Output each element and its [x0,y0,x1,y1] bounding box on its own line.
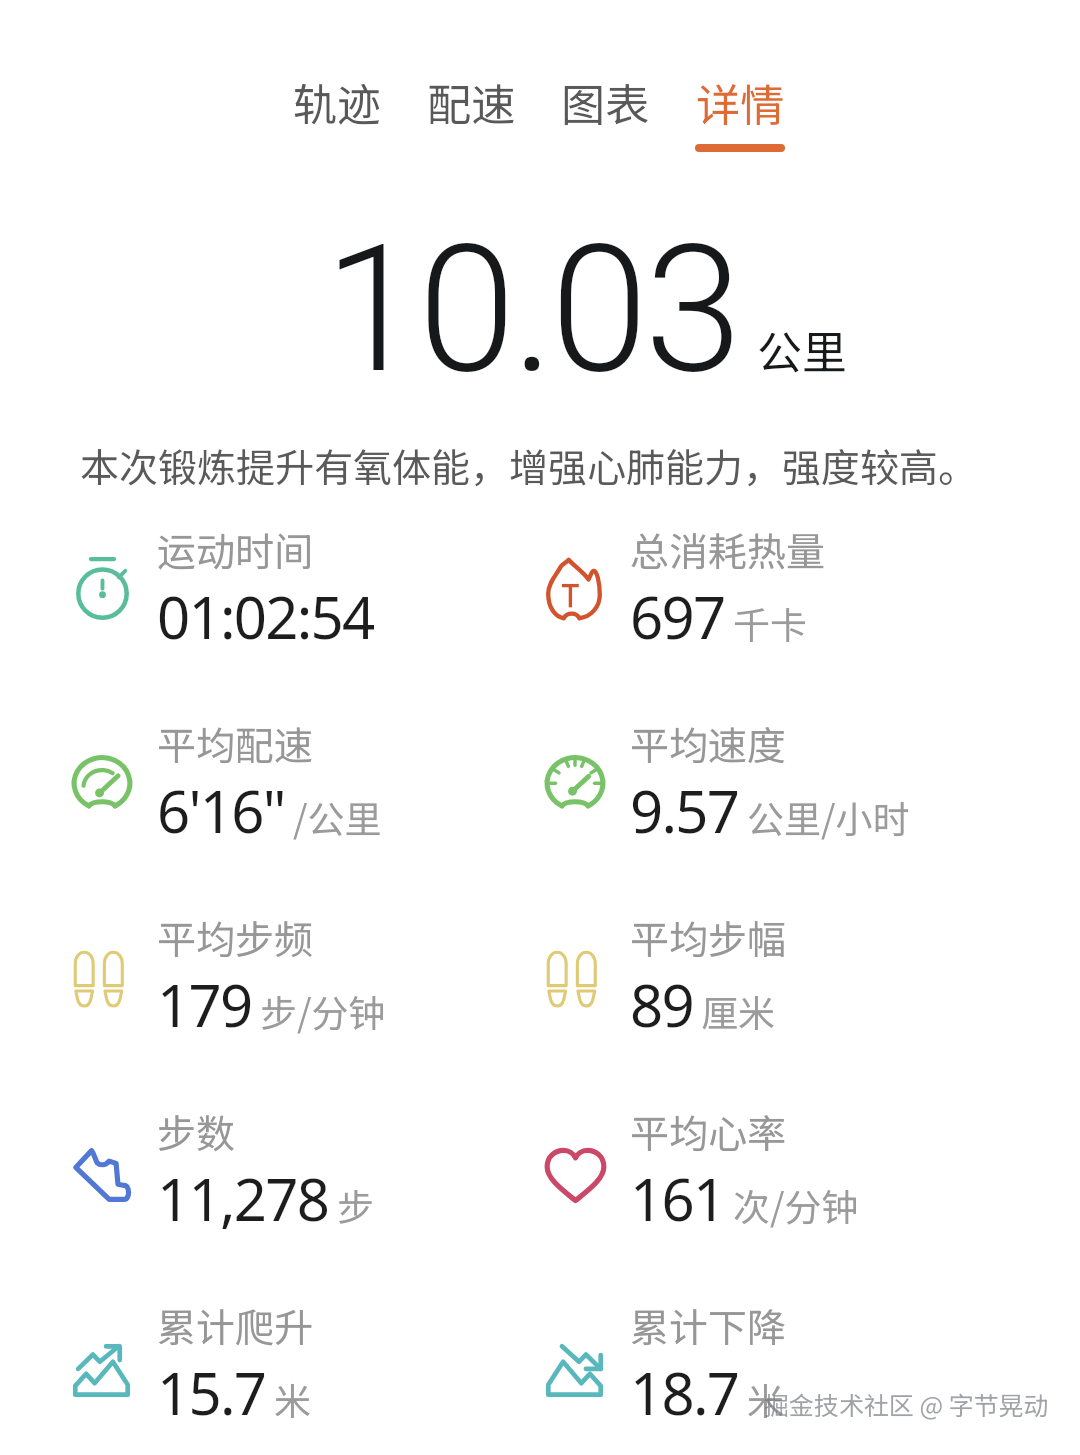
staticText: 平均步频 [157,909,314,965]
staticText: 步数 [157,1103,236,1159]
staticText: 掘金技术社区 @ 字节晃动 [764,1386,1049,1422]
staticText: 运动时间 [157,521,314,577]
staticText: 次/分钟 [733,1178,859,1232]
staticText: 179 [157,965,252,1044]
staticText: 米 [747,1372,784,1426]
staticText: 步 [337,1178,374,1232]
staticText: 米 [274,1372,311,1426]
staticText: 详情 [696,70,784,134]
staticText: 6'16" [157,771,285,850]
staticText: 图表 [561,70,649,134]
staticText: 10.03 [324,207,739,413]
staticText: 步/分钟 [260,984,386,1038]
staticText: 本次锻炼提升有氧体能，增强心肺能力，强度较高。 [80,437,978,493]
staticText: 千卡 [733,596,807,650]
staticText: 公里 [757,317,848,382]
staticText: 平均心率 [630,1103,787,1159]
button[interactable]: 详情 [695,70,785,152]
staticText: /公里 [293,790,382,844]
staticText: 平均速度 [630,715,787,771]
staticText: 平均配速 [157,715,314,771]
staticText: 11,278 [157,1159,329,1238]
staticText: 轨迹 [293,70,381,134]
staticText: 公里/小时 [747,790,910,844]
button[interactable]: 轨迹 [293,70,381,134]
staticText: 01:02:54 [157,577,374,656]
staticText: 厘米 [701,984,775,1038]
button[interactable]: 配速 [427,70,515,134]
button[interactable]: 图表 [561,70,649,134]
staticText: 15.7 [157,1353,266,1432]
staticText: 89 [630,965,693,1044]
staticText: 9.57 [630,771,739,850]
staticText: 累计爬升 [157,1297,314,1353]
staticText: 配速 [427,70,515,134]
staticText: 累计下降 [630,1297,787,1353]
staticText: 总消耗热量 [630,521,826,577]
staticText: 18.7 [630,1353,739,1432]
staticText: 161 [630,1159,725,1238]
staticText: 平均步幅 [630,909,787,965]
staticText: 697 [630,577,725,656]
